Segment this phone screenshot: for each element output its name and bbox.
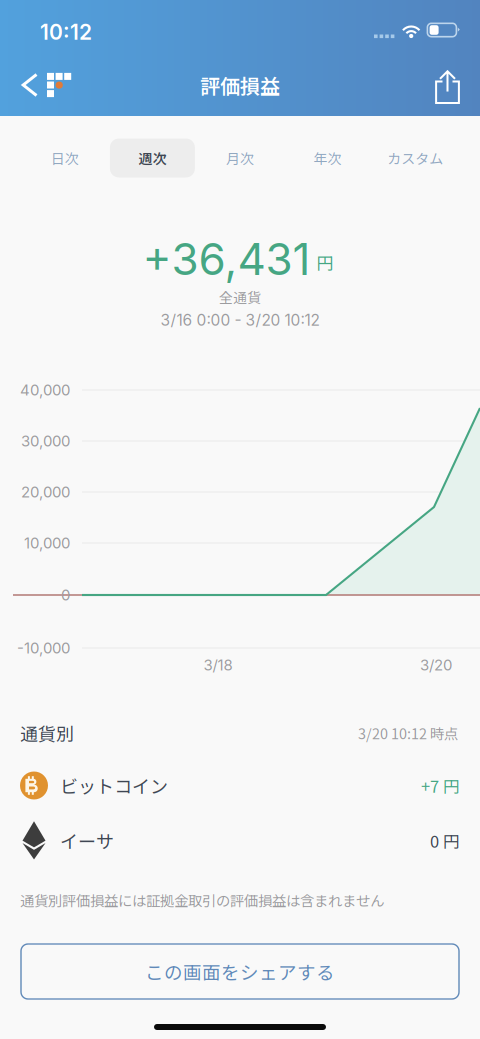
staticText: 年次	[314, 148, 342, 168]
button[interactable]: 日次	[21, 118, 109, 196]
staticText: 円	[316, 250, 333, 275]
staticText: 10:12	[40, 19, 92, 45]
staticText: イーサ	[60, 827, 114, 854]
staticText: 通貨別評価損益には証拠金取引の評価損益は含まれません	[20, 890, 384, 910]
button[interactable]: Back	[0, 54, 83, 116]
staticText: 0 円	[430, 829, 460, 852]
button[interactable]: カスタム	[371, 118, 459, 196]
staticText: -10,000	[17, 639, 70, 657]
staticText: 3/16 0:00 - 3/20 10:12	[160, 311, 319, 329]
staticText: 3/20	[420, 656, 452, 674]
staticText: 評価損益	[200, 70, 280, 99]
staticText: 30,000	[21, 432, 70, 450]
staticText: 40,000	[20, 381, 70, 399]
staticText: 月次	[226, 148, 254, 168]
staticText: 20,000	[21, 483, 70, 501]
button[interactable]: 週次	[109, 118, 196, 196]
staticText: +7 円	[421, 774, 460, 797]
staticText: 週次	[138, 148, 166, 168]
staticText: この画面をシェアする	[145, 958, 335, 985]
staticText: 3/18	[203, 656, 232, 674]
staticText: 全通貨	[219, 287, 261, 307]
button[interactable]: ビットコイン	[0, 754, 480, 809]
button[interactable]: 年次	[284, 118, 371, 196]
staticText: 10,000	[24, 534, 70, 552]
staticText: カスタム	[387, 148, 443, 168]
staticText: +36,431	[142, 232, 310, 286]
staticText: ビットコイン	[60, 772, 168, 799]
staticText: 0	[61, 586, 70, 604]
staticText: 通貨別	[20, 720, 74, 746]
button[interactable]: この画面をシェアする	[21, 944, 459, 999]
staticText: 3/20 10:12 時点	[358, 723, 458, 743]
button[interactable]: イーサ	[0, 809, 480, 864]
button[interactable]: Share	[419, 54, 480, 116]
staticText: 日次	[51, 148, 79, 168]
button[interactable]: 月次	[196, 118, 284, 196]
